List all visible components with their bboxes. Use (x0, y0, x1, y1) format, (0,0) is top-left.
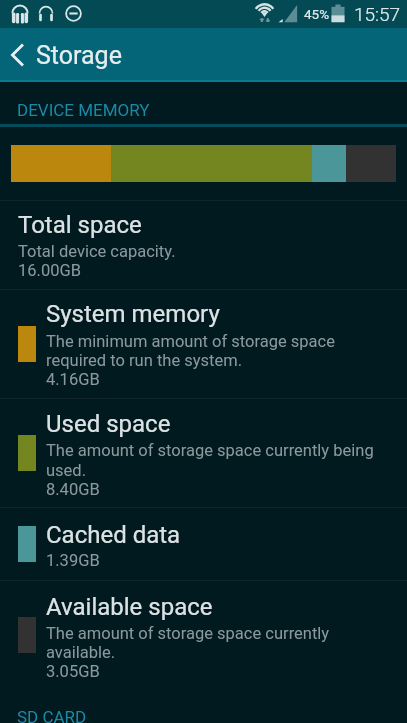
button[interactable]: Total space (0, 201, 407, 289)
staticText: The amount of storage space currently be… (46, 441, 374, 460)
staticText: The amount of storage space currently (46, 624, 330, 643)
button[interactable]: Used space (0, 399, 407, 507)
staticText: 1.39GB (46, 551, 100, 570)
button[interactable]: System memory (0, 290, 407, 398)
staticText: available. (46, 643, 116, 662)
staticText: Cached data (46, 521, 181, 549)
button[interactable]: Cached data (0, 508, 407, 580)
button[interactable]: Available space (0, 581, 407, 689)
staticText: Storage (36, 41, 122, 70)
staticText: used. (46, 461, 87, 480)
staticText: required to run the system. (46, 351, 243, 370)
staticText: 16.00GB (18, 261, 81, 280)
staticText: The minimum amount of storage space (46, 332, 335, 351)
staticText: Total space (18, 211, 142, 239)
staticText: 3.05GB (46, 662, 100, 681)
button[interactable]: Navigate up (0, 28, 407, 82)
staticText: DEVICE MEMORY (17, 100, 150, 120)
staticText: 8.40GB (46, 480, 100, 499)
staticText: Available space (46, 593, 213, 621)
staticText: SD CARD (17, 707, 87, 723)
staticText: 4.16GB (46, 370, 100, 389)
staticText: 15:57 (354, 3, 401, 25)
staticText: Used space (46, 410, 171, 438)
staticText: 45% (304, 6, 330, 22)
staticText: Total device capacity. (18, 242, 176, 261)
staticText: System memory (46, 300, 220, 328)
